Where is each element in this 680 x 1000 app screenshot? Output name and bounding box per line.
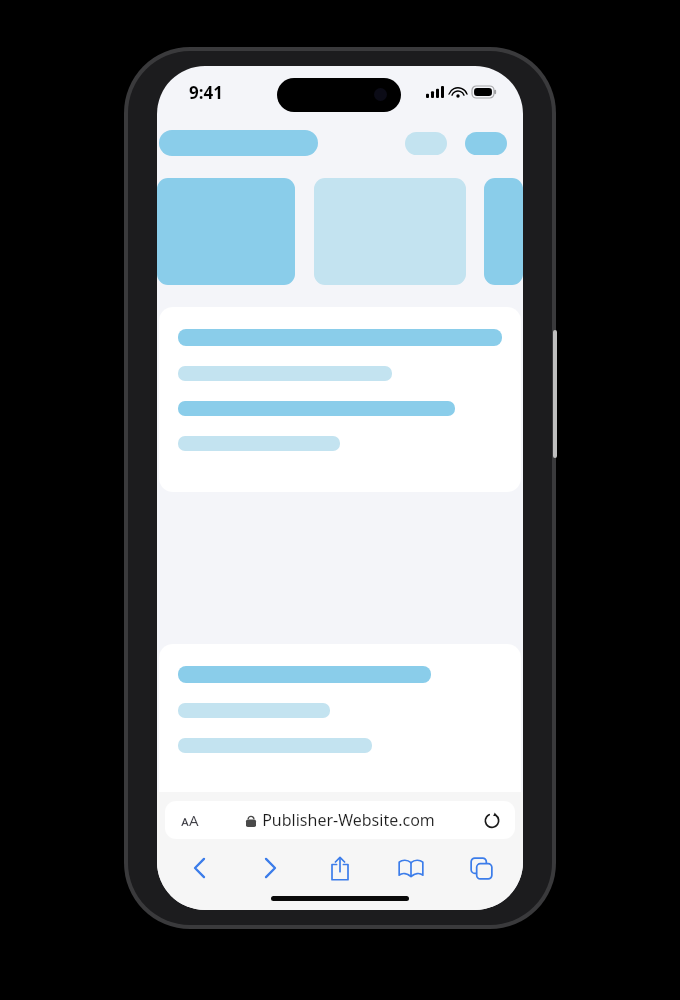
button[interactable]: Tabs	[457, 850, 505, 886]
button[interactable]	[159, 307, 521, 492]
staticText: Publisher-Website.com	[262, 809, 435, 831]
button[interactable]	[405, 132, 447, 155]
button[interactable]: Forward	[246, 850, 294, 886]
button[interactable]	[314, 178, 466, 285]
button[interactable]: Bookmarks	[387, 850, 435, 886]
button[interactable]: Reload page	[481, 809, 503, 831]
staticText: 9:41	[189, 81, 223, 104]
button[interactable]	[159, 644, 521, 829]
button[interactable]: Back	[175, 850, 223, 886]
staticText: ᴀA	[181, 810, 199, 830]
button[interactable]	[157, 178, 295, 285]
button[interactable]	[465, 132, 507, 155]
button[interactable]	[484, 178, 523, 285]
button[interactable]: Share	[316, 850, 364, 886]
button[interactable]: ᴀA	[165, 801, 515, 839]
button[interactable]	[159, 130, 318, 156]
